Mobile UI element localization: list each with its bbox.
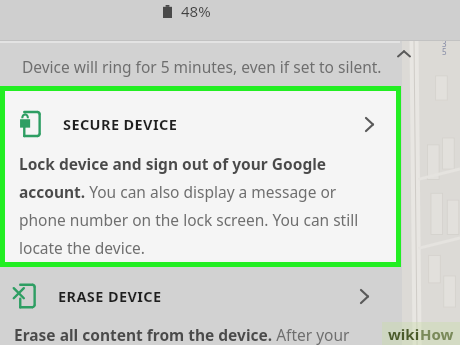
staticText: Device will ring for 5 minutes, even if … bbox=[22, 56, 382, 77]
staticText: How bbox=[420, 324, 454, 344]
staticText: wiki bbox=[388, 324, 420, 344]
staticText: 48% bbox=[181, 1, 211, 21]
staticText: 3 bbox=[442, 38, 447, 49]
staticText: locate the device. bbox=[19, 237, 146, 258]
button[interactable]: Scroll up bbox=[394, 44, 414, 64]
button[interactable]: SECURE DEVICE bbox=[0, 86, 401, 267]
staticText: Erase all content from the device. After… bbox=[14, 324, 350, 345]
staticText: phone number on the lock screen. You can… bbox=[19, 209, 359, 230]
staticText: account. You can also display a message … bbox=[19, 181, 337, 202]
button[interactable]: ERASE DEVICE bbox=[0, 270, 401, 345]
staticText: SECURE DEVICE bbox=[63, 114, 178, 134]
staticText: Lock device and sign out of your Google bbox=[19, 153, 327, 174]
staticText: 5 bbox=[442, 46, 447, 57]
staticText: ERASE DEVICE bbox=[58, 286, 162, 306]
